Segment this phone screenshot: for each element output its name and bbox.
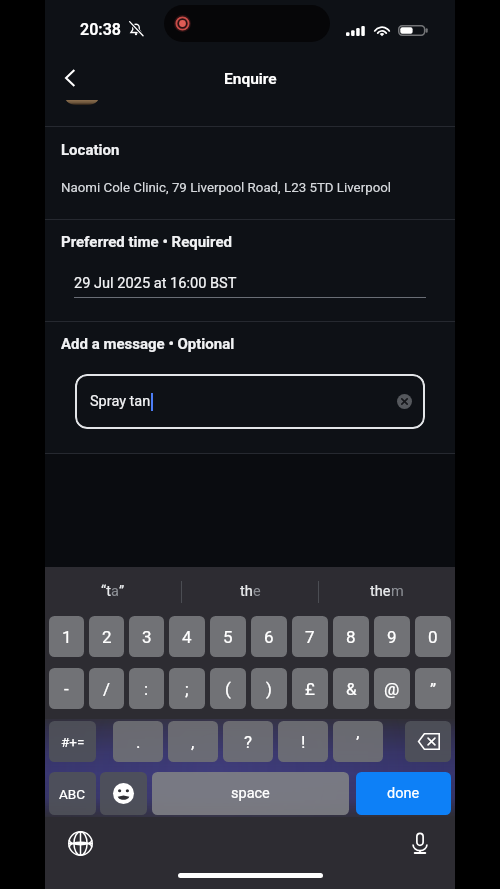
button[interactable]: 0: [415, 616, 451, 657]
staticText: a: [111, 583, 119, 600]
staticText: ”: [119, 583, 125, 600]
staticText: “t: [101, 583, 111, 600]
staticText: Enquire: [224, 70, 277, 88]
button[interactable]: “t: [45, 567, 181, 616]
button[interactable]: ?: [223, 721, 273, 762]
button[interactable]: 4: [169, 616, 205, 657]
staticText: Location: [61, 141, 120, 159]
button[interactable]: ’: [333, 721, 383, 762]
button[interactable]: th: [182, 567, 318, 616]
staticText: @: [384, 679, 400, 699]
staticText: 8: [346, 627, 356, 647]
button[interactable]: ABC: [49, 772, 96, 815]
staticText: 3: [142, 627, 152, 647]
button[interactable]: the: [319, 567, 455, 616]
button[interactable]: Emoji: [100, 772, 147, 815]
staticText: ): [266, 679, 272, 699]
button[interactable]: 3: [129, 616, 164, 657]
button[interactable]: @: [374, 668, 410, 709]
staticText: 6: [264, 627, 274, 647]
staticText: 4: [182, 627, 192, 647]
staticText: ABC: [59, 786, 86, 802]
staticText: e: [253, 583, 261, 600]
button[interactable]: 29 Jul 2025 at 16:00 BST: [74, 270, 426, 298]
button[interactable]: ,: [168, 721, 218, 762]
button[interactable]: 1: [49, 616, 84, 657]
button[interactable]: 9: [374, 616, 410, 657]
button[interactable]: 8: [333, 616, 369, 657]
button[interactable]: Back: [51, 59, 89, 97]
button[interactable]: :: [129, 668, 164, 709]
button[interactable]: !: [278, 721, 328, 762]
staticText: 20:38: [80, 20, 121, 39]
button[interactable]: ;: [169, 668, 205, 709]
staticText: ;: [185, 679, 189, 699]
other: Clear text: [397, 394, 412, 409]
button[interactable]: £: [292, 668, 328, 709]
staticText: /: [103, 679, 111, 699]
staticText: -: [64, 679, 69, 699]
button[interactable]: 7: [292, 616, 328, 657]
staticText: 1: [62, 627, 72, 647]
button[interactable]: 6: [251, 616, 287, 657]
button[interactable]: Backspace: [405, 721, 451, 762]
staticText: Preferred time • Required: [61, 233, 232, 251]
staticText: Naomi Cole Clinic, 79 Liverpool Road, L2…: [61, 180, 392, 196]
button[interactable]: done: [356, 772, 451, 815]
button[interactable]: Voice input: [403, 826, 437, 860]
staticText: 0: [428, 627, 438, 647]
staticText: ”: [430, 679, 437, 699]
staticText: 5: [223, 627, 233, 647]
staticText: (: [225, 679, 231, 699]
staticText: ?: [244, 732, 253, 752]
button[interactable]: (: [210, 668, 246, 709]
button[interactable]: &: [333, 668, 369, 709]
staticText: 9: [387, 627, 397, 647]
staticText: !: [301, 732, 306, 752]
button[interactable]: /: [89, 668, 124, 709]
staticText: &: [346, 679, 357, 699]
button[interactable]: .: [113, 721, 163, 762]
button[interactable]: -: [49, 668, 84, 709]
staticText: m: [391, 583, 404, 600]
button[interactable]: Change keyboard language: [63, 826, 97, 860]
button[interactable]: space: [152, 772, 349, 815]
button[interactable]: 5: [210, 616, 246, 657]
staticText: space: [231, 785, 270, 802]
staticText: ’: [356, 732, 360, 752]
staticText: done: [387, 785, 420, 802]
button[interactable]: 2: [89, 616, 124, 657]
button[interactable]: ): [251, 668, 287, 709]
button[interactable]: Spray tan: [75, 374, 425, 429]
staticText: 29 Jul 2025 at 16:00 BST: [74, 274, 237, 291]
staticText: .: [136, 732, 141, 752]
staticText: the: [370, 583, 391, 600]
staticText: ,: [191, 732, 195, 752]
staticText: £: [305, 679, 315, 699]
staticText: #+=: [61, 734, 85, 750]
staticText: th: [240, 583, 253, 600]
staticText: 7: [305, 627, 315, 647]
staticText: 2: [102, 627, 112, 647]
button[interactable]: ”: [415, 668, 451, 709]
staticText: Add a message • Optional: [61, 335, 235, 353]
staticText: :: [144, 679, 149, 699]
button[interactable]: #+=: [49, 721, 96, 762]
staticText: Spray tan: [90, 393, 151, 410]
